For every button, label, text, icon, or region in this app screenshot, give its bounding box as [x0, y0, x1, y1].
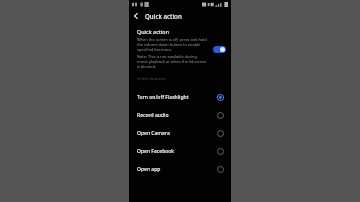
- staticText: Select features: [137, 76, 166, 82]
- staticText: Record audio: [137, 112, 169, 119]
- button[interactable]: Open Camera: [129, 124, 231, 142]
- staticText: Turn on/off Flashlight: [137, 94, 189, 101]
- button[interactable]: Quick action toggle: [212, 45, 226, 53]
- staticText: Quick action: [137, 28, 170, 35]
- button[interactable]: Turn on/off Flashlight: [129, 88, 231, 106]
- staticText: Open app: [137, 166, 161, 173]
- button[interactable]: Open Facebook: [129, 142, 231, 160]
- staticText: Open Camera: [137, 130, 170, 137]
- staticText: Note: This is not available during music…: [137, 54, 208, 69]
- staticText: When the screen is off, press and hold t…: [137, 37, 208, 52]
- staticText: Quick action: [145, 12, 182, 20]
- staticText: Open Facebook: [137, 148, 175, 155]
- button[interactable]: Record audio: [129, 106, 231, 124]
- button[interactable]: Back: [129, 9, 143, 23]
- button[interactable]: Open app: [129, 160, 231, 178]
